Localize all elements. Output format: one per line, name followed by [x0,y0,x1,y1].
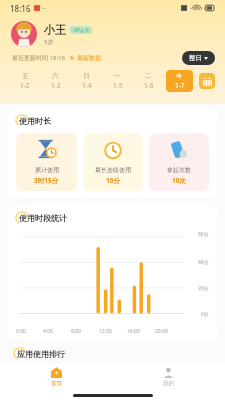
staticText: 0分 [201,311,209,318]
staticText: 首页 [51,380,62,387]
button[interactable]: 首页 [0,365,112,389]
button[interactable]: 日 [71,70,102,92]
staticText: 拿起次数 [167,166,191,174]
staticText: 20分 [198,285,209,292]
staticText: 使用时长 [19,116,51,126]
button[interactable]: 选择日期 [199,73,215,89]
staticText: 六 [52,72,59,80]
staticText: 使用时段统计 [19,213,67,223]
button[interactable]: 累计使用 [16,133,77,191]
staticText: 五 [22,72,29,80]
staticText: 16分 [106,176,120,185]
staticText: 日 [83,72,90,80]
staticText: 3时15分 [34,176,59,185]
button[interactable]: 我的 [112,365,225,389]
staticText: 应用使用排行 [17,349,65,359]
button[interactable]: 最新数据 [69,54,101,62]
staticText: 1-3 [51,81,61,90]
staticText: 20:00 [155,328,168,335]
button[interactable]: 今 [166,70,193,92]
staticText: 8:00 [71,328,81,335]
staticText: 10次 [172,176,186,185]
staticText: 1-7 [175,81,185,90]
staticText: 整日 [189,54,202,62]
button[interactable]: 五 [10,70,40,92]
staticText: 1-5 [113,81,123,90]
staticText: 1-2 [20,81,30,90]
staticText: 18:16 [10,3,31,14]
staticText: 60分 [198,231,209,238]
staticText: 一 [114,72,121,80]
staticText: 今 [176,72,183,80]
button[interactable]: 六 [40,70,71,92]
button[interactable]: 最长连续使用 [83,133,143,191]
button[interactable]: 小王 [11,21,225,47]
staticText: 小王 [44,23,66,37]
staticText: 0:00 [16,328,26,335]
staticText: 5岁 [44,38,54,46]
staticText: 最新数据 [77,54,101,62]
staticText: 最近更新时间 18:16 [12,54,65,62]
staticText: 12:00 [99,328,112,335]
button[interactable]: 拿起次数 [149,133,209,191]
staticText: 最长连续使用 [95,166,131,174]
staticText: 1-4 [82,81,92,90]
staticText: VIP会员 [73,27,89,33]
button[interactable]: 整日 [182,51,215,65]
staticText: 4:00 [43,328,53,335]
button[interactable]: 一 [102,70,133,92]
button[interactable]: 二 [133,70,164,92]
staticText: 1-6 [144,81,154,90]
staticText: ··· [42,4,47,12]
staticText: 二 [145,72,152,80]
staticText: 16:00 [127,328,140,335]
staticText: 40分 [198,259,209,266]
staticText: 累计使用 [35,166,59,174]
staticText: 我的 [163,380,174,387]
